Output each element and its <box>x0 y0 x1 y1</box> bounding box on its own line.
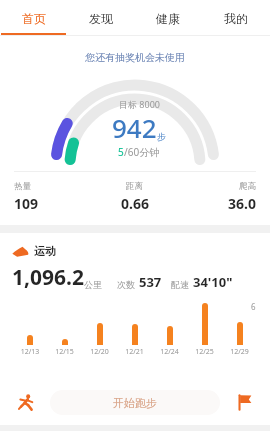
staticText: 健康 <box>156 11 180 26</box>
staticText: 公里 <box>84 279 102 290</box>
button[interactable]: 爬高 <box>175 181 256 213</box>
staticText: 12/25 <box>187 347 222 357</box>
staticText: 首页 <box>22 11 46 26</box>
button[interactable]: Goal flag <box>230 388 258 416</box>
staticText: 配速 <box>171 279 189 290</box>
staticText: 12/13 <box>13 347 47 357</box>
staticText: 目标 8000 <box>119 98 160 110</box>
staticText: 537 <box>139 273 162 291</box>
staticText: 942 <box>112 110 157 145</box>
staticText: 爬高 <box>239 181 256 192</box>
staticText: 12/29 <box>222 347 257 357</box>
staticText: 次数 <box>117 279 135 290</box>
staticText: 12/20 <box>82 347 117 357</box>
staticText: 12/24 <box>152 347 187 357</box>
staticText: 109 <box>14 194 39 213</box>
button[interactable]: Running <box>12 388 40 416</box>
staticText: 12/21 <box>117 347 152 357</box>
staticText: 发现 <box>89 11 113 26</box>
button[interactable]: 开始跑步 <box>50 390 220 415</box>
button[interactable]: 运动 <box>12 244 56 258</box>
button[interactable]: 首页 <box>0 0 67 36</box>
staticText: 热量 <box>14 181 31 192</box>
staticText: 开始跑步 <box>113 396 157 410</box>
staticText: 我的 <box>224 11 248 26</box>
staticText: 步 <box>157 131 166 142</box>
staticText: 36.0 <box>228 194 256 213</box>
button[interactable]: 健康 <box>134 0 202 36</box>
button[interactable]: 我的 <box>202 0 270 36</box>
staticText: 34'10" <box>193 273 233 291</box>
staticText: 1,096.2 <box>12 263 84 292</box>
staticText: 12/15 <box>47 347 82 357</box>
staticText: 运动 <box>34 244 56 258</box>
staticText: 5 <box>118 145 124 159</box>
button[interactable]: 发现 <box>67 0 134 36</box>
staticText: 0.66 <box>121 194 149 213</box>
staticText: 6 <box>251 301 256 312</box>
staticText: 您还有抽奖机会未使用 <box>0 51 270 64</box>
staticText: 距离 <box>126 181 143 192</box>
staticText: /60分钟 <box>124 145 160 159</box>
button[interactable]: 距离 <box>94 181 175 213</box>
button[interactable]: 热量 <box>14 181 94 213</box>
